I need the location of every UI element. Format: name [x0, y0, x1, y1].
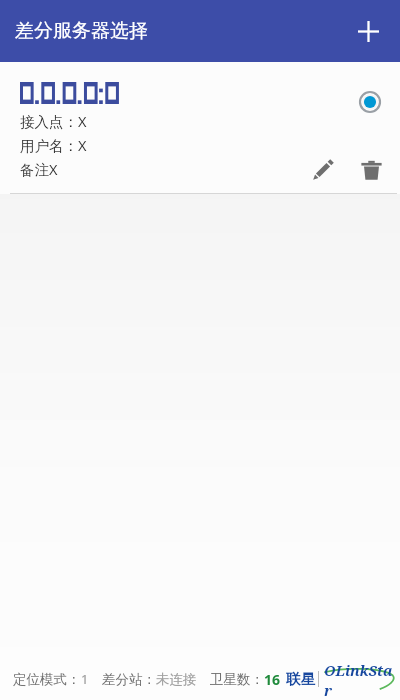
- staticText: 备注X: [20, 159, 58, 179]
- staticText: 联星: [286, 670, 315, 688]
- staticText: 卫星数：: [210, 671, 264, 688]
- button[interactable]: Select this server: [349, 81, 391, 123]
- staticText: 接入点：X: [20, 111, 87, 131]
- button[interactable]: 接入点：X: [0, 62, 400, 194]
- staticText: 定位模式：: [13, 671, 81, 688]
- button[interactable]: Add server: [345, 8, 391, 54]
- staticText: 差分服务器选择: [15, 19, 148, 43]
- staticText: 16: [264, 670, 281, 689]
- staticText: 差分站：: [102, 671, 156, 688]
- button[interactable]: Edit: [301, 148, 345, 192]
- staticText: 用户名：X: [20, 135, 87, 155]
- button[interactable]: Delete: [349, 148, 393, 192]
- staticText: 1: [81, 670, 89, 688]
- staticText: 未连接: [156, 671, 197, 688]
- staticText: OLinkStar: [324, 660, 398, 700]
